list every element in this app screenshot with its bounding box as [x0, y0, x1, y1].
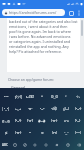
- staticText: ≶: [5, 131, 8, 135]
- staticText: (ᴖᴖ): [75, 131, 81, 135]
- button[interactable]: Emoji nature: [20, 139, 30, 150]
- staticText: |•‿•|: [2, 107, 10, 111]
- button[interactable]: |•‿•|: [0, 103, 12, 115]
- button[interactable]: Emoji food: [30, 139, 40, 150]
- button[interactable]: ٭◡٭: [12, 103, 24, 115]
- staticText: Choose an app/game forum:: [8, 77, 54, 82]
- staticText: ≋: [41, 131, 44, 135]
- staticText: ᵛᵛ: [29, 131, 32, 135]
- staticText: (ᴛᴛ): [52, 131, 57, 135]
- button[interactable]: ABC: [0, 139, 10, 150]
- button[interactable]: •ᴗ•: [36, 103, 48, 115]
- button[interactable]: Switch tabs: [67, 9, 75, 17]
- staticText: ᵕ̈: [65, 95, 67, 99]
- staticText: (ᵔᴥᵔ): [15, 131, 22, 135]
- button[interactable]: (•ᴗ•): [72, 103, 84, 115]
- button[interactable]: ≋: [36, 127, 48, 139]
- staticText: help? Pic attached for reference.: [9, 49, 62, 54]
- staticText: ໒(ᴗ): [63, 107, 69, 111]
- button[interactable]: More options: [75, 9, 82, 16]
- staticText: backed out of the categories and also lo…: [9, 19, 78, 24]
- staticText: ٭◡٭: [15, 107, 22, 111]
- button[interactable]: ໒(ᴗ): [60, 103, 72, 115]
- staticText: ʅ(ツ)ʃ: [15, 95, 22, 99]
- button[interactable]: ᵕ‿ᵕ: [60, 127, 72, 139]
- button[interactable]: Emoji symbols: [51, 139, 62, 150]
- button[interactable]: ⊹₊: [72, 91, 84, 103]
- button[interactable]: Emoji faces: [10, 139, 20, 150]
- button[interactable]: Recent: [62, 139, 73, 150]
- staticText: •ᴗ•: [40, 107, 45, 111]
- staticText: reinstalled the app and nothing. Any: [9, 44, 69, 49]
- button[interactable]: ᵕ̈: [60, 91, 72, 103]
- staticText: ᴖ̈: [41, 95, 44, 99]
- button[interactable]: https://androidforums.com/: [2, 9, 65, 16]
- button[interactable]: (ᵔᴥᵔ): [12, 127, 24, 139]
- staticText: ≧◡≦: [2, 119, 11, 123]
- staticText: (•̀ᴗ): [75, 119, 81, 123]
- staticText: https://androidforums.com/: [9, 10, 57, 15]
- button[interactable]: ᵔᴥᵔ: [24, 103, 36, 115]
- staticText: ⊹₊: [76, 95, 80, 99]
- staticText: ᵕ‿ᵕ: [64, 131, 69, 135]
- staticText: ʘ‿ʘ: [51, 95, 58, 99]
- staticText: ᓚᘏᗢ: [26, 95, 35, 99]
- button[interactable]: Backspace: [73, 139, 84, 150]
- button[interactable]: ≧◡≦: [0, 115, 12, 127]
- button[interactable]: (ᴛᴛ): [48, 127, 60, 139]
- button[interactable]: Emoji objects: [40, 139, 51, 150]
- button[interactable]: ◕ᴗ◕: [36, 115, 48, 127]
- button[interactable]: ٥ᵕ٥: [60, 115, 72, 127]
- button[interactable]: ᴖ̈: [36, 91, 48, 103]
- button[interactable]: (•̀ᴗ): [72, 115, 84, 127]
- button[interactable]: (ᴖᴖ): [72, 127, 84, 139]
- staticText: (•̀ᴗ•́): [15, 119, 22, 123]
- button[interactable]: ᵛᵛ: [24, 127, 36, 139]
- button[interactable]: ٩(ᐛ): [48, 103, 60, 115]
- button[interactable]: •ᴖ•: [0, 91, 12, 103]
- button[interactable]: ᓚᘏᗢ: [24, 91, 36, 103]
- staticText: or categories again. I uninstalled and: [9, 39, 71, 44]
- staticText: ٩(ᐛ): [51, 107, 58, 111]
- staticText: (ᵔᴥᵔ): [51, 119, 58, 123]
- staticText: emoticons, i went about it and then: [9, 24, 68, 29]
- staticText: (•ᴗ•): [75, 107, 82, 111]
- staticText: ABC: [2, 143, 8, 147]
- staticText: ◕ᴗ◕: [38, 119, 46, 123]
- staticText: i was before. No advanced emoticons: [9, 34, 71, 39]
- staticText: ʕ·ᴥ·ʔ: [27, 119, 34, 123]
- staticText: ᵔᴥᵔ: [28, 107, 33, 111]
- staticText: ٥ᵕ٥: [64, 119, 69, 123]
- button[interactable]: (•̀ᴗ•́): [12, 115, 24, 127]
- button[interactable]: backed out of the categories and also lo…: [7, 18, 80, 72]
- button[interactable]: ≶: [0, 127, 12, 139]
- button[interactable]: General: [11, 85, 26, 88]
- button[interactable]: (ᵔᴥᵔ): [48, 115, 60, 127]
- staticText: poof its gone again. Im back to where: [9, 29, 72, 34]
- button[interactable]: ʘ‿ʘ: [48, 91, 60, 103]
- button[interactable]: ʅ(ツ)ʃ: [12, 91, 24, 103]
- button[interactable]: ʕ·ᴥ·ʔ: [24, 115, 36, 127]
- staticText: •ᴖ•: [4, 95, 9, 99]
